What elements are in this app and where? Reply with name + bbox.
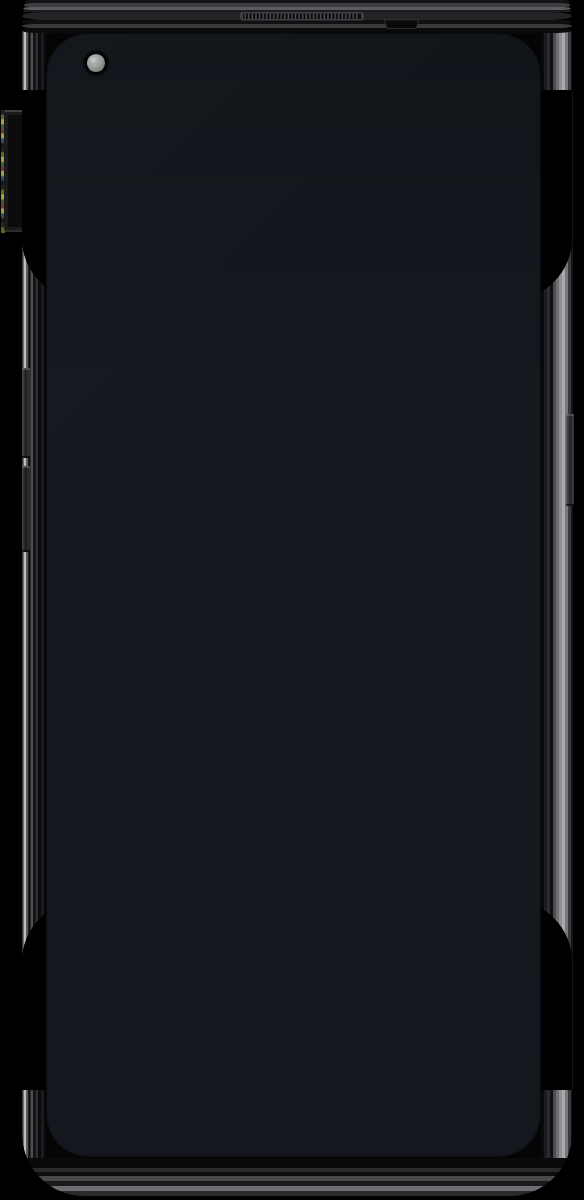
- button[interactable]: Phone display, screen off: [0, 0, 584, 1200]
